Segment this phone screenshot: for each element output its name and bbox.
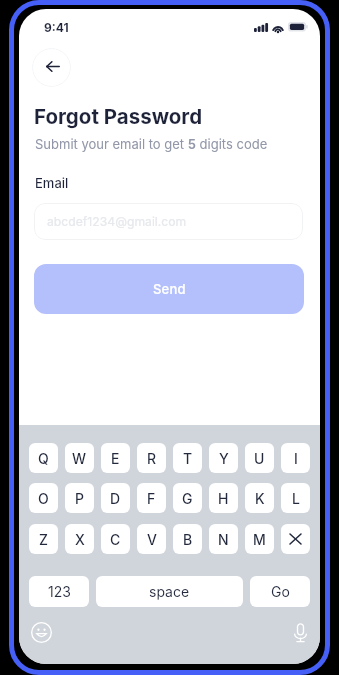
button[interactable]: P: [65, 483, 94, 513]
button[interactable]: abcdef1234@gmail.com: [34, 203, 303, 240]
staticText: K: [255, 490, 265, 507]
button[interactable]: Backspace: [281, 524, 310, 554]
button[interactable]: L: [281, 483, 310, 513]
button[interactable]: M: [245, 524, 274, 554]
button[interactable]: Y: [209, 443, 238, 473]
staticText: G: [182, 490, 193, 507]
button[interactable]: 123: [29, 576, 89, 607]
button[interactable]: N: [209, 524, 238, 554]
staticText: P: [75, 490, 84, 507]
button[interactable]: C: [101, 524, 130, 554]
button[interactable]: F: [137, 483, 166, 513]
button[interactable]: B: [173, 524, 202, 554]
button[interactable]: Back: [32, 48, 71, 87]
staticText: W: [72, 450, 87, 467]
button[interactable]: D: [101, 483, 130, 513]
staticText: 9:41: [44, 20, 69, 35]
staticText: M: [253, 531, 266, 548]
button[interactable]: Z: [29, 524, 58, 554]
staticText: N: [218, 531, 229, 548]
button[interactable]: R: [137, 443, 166, 473]
staticText: 123: [48, 583, 71, 600]
staticText: R: [147, 450, 157, 467]
button[interactable]: X: [65, 524, 94, 554]
staticText: Send: [153, 281, 186, 297]
staticText: abcdef1234@gmail.com: [47, 214, 187, 229]
staticText: U: [254, 450, 265, 467]
staticText: V: [147, 531, 157, 548]
button[interactable]: K: [245, 483, 274, 513]
staticText: T: [183, 450, 193, 467]
staticText: Go: [271, 583, 290, 600]
staticText: E: [111, 450, 120, 467]
button[interactable]: Send: [34, 264, 304, 314]
button[interactable]: T: [173, 443, 202, 473]
button[interactable]: W: [65, 443, 94, 473]
staticText: F: [147, 490, 156, 507]
button[interactable]: G: [173, 483, 202, 513]
button[interactable]: Q: [29, 443, 58, 473]
button[interactable]: H: [209, 483, 238, 513]
staticText: Y: [219, 450, 229, 467]
button[interactable]: Go: [250, 576, 310, 607]
staticText: Q: [38, 450, 49, 467]
staticText: I: [294, 450, 298, 467]
button[interactable]: E: [101, 443, 130, 473]
staticText: Forgot Password: [34, 104, 203, 129]
staticText: H: [218, 490, 229, 507]
staticText: B: [183, 531, 193, 548]
button[interactable]: Voice input: [290, 622, 311, 643]
staticText: D: [110, 490, 121, 507]
staticText: O: [38, 490, 49, 507]
staticText: X: [75, 531, 85, 548]
button[interactable]: space: [96, 576, 243, 607]
staticText: Submit your email to get 5 digits code: [35, 136, 268, 152]
staticText: Z: [39, 531, 48, 548]
staticText: C: [110, 531, 121, 548]
button[interactable]: Emoji keyboard: [31, 622, 52, 643]
button[interactable]: O: [29, 483, 58, 513]
staticText: L: [292, 490, 300, 507]
button[interactable]: I: [281, 443, 310, 473]
button[interactable]: U: [245, 443, 274, 473]
staticText: space: [149, 583, 190, 600]
staticText: Email: [35, 175, 69, 191]
button[interactable]: V: [137, 524, 166, 554]
